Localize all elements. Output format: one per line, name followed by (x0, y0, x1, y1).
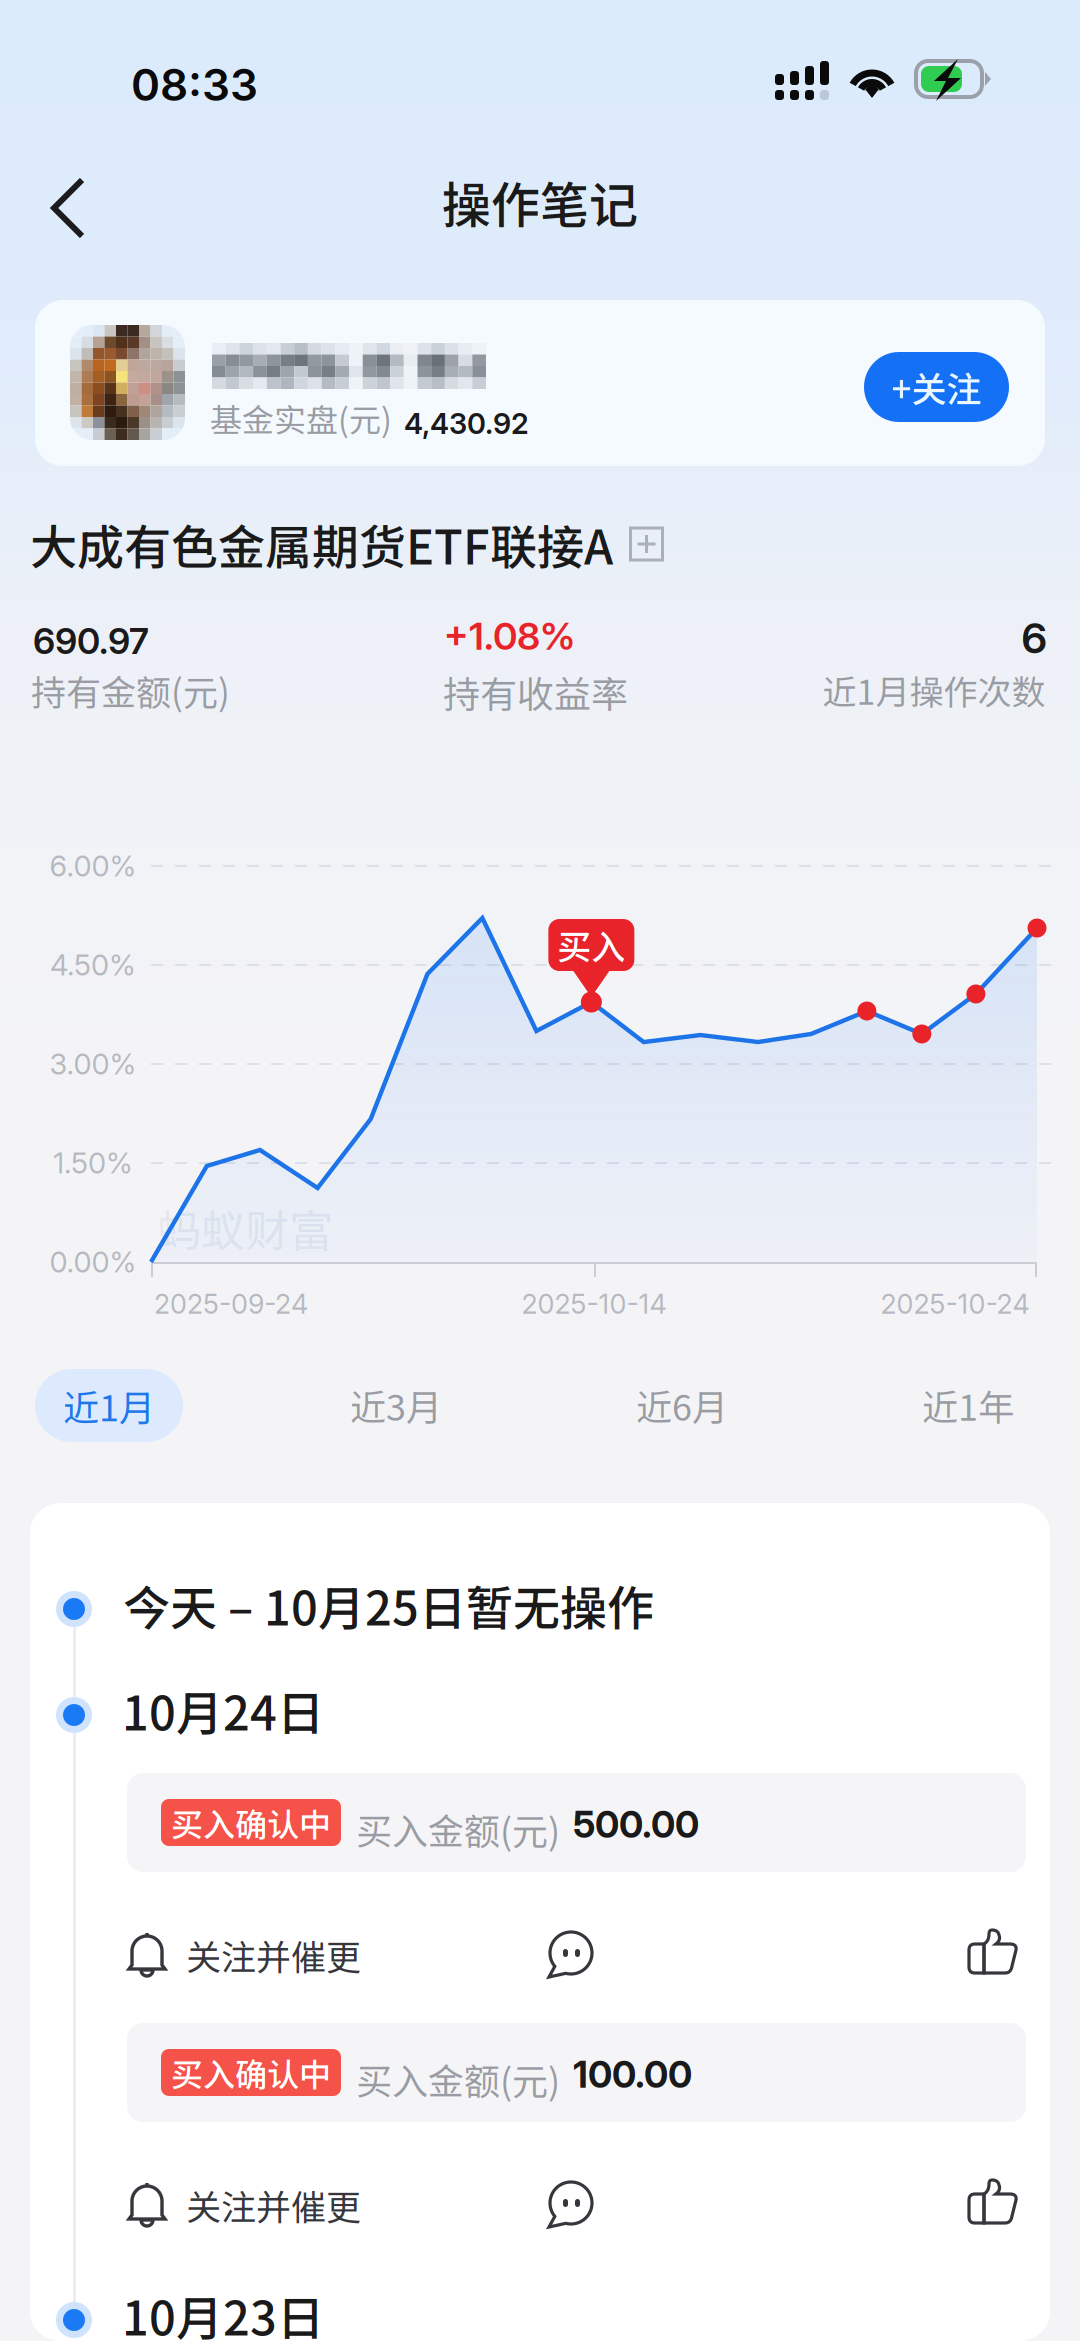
staticText: 3.00% (49, 1046, 136, 1082)
staticText: 买入确认中 (171, 2049, 331, 2096)
staticText: 持有收益率 (443, 665, 628, 719)
staticText: 08:33 (131, 58, 258, 111)
staticText: 近1年 (922, 1379, 1014, 1431)
button[interactable]: 近1年 (894, 1368, 1042, 1441)
button[interactable]: Like (943, 1905, 1043, 2005)
staticText: 买入金额(元) (356, 2053, 560, 2105)
button[interactable]: 近3月 (322, 1368, 470, 1441)
staticText: 关注并催更 (186, 1930, 361, 1980)
button[interactable]: 关注并催更 (127, 1905, 379, 2005)
staticText: 500.00 (573, 1802, 699, 1847)
staticText: 0.00% (49, 1244, 136, 1280)
button[interactable]: Comment (521, 2155, 621, 2255)
staticText: 近1月 (63, 1379, 155, 1431)
button[interactable]: 近1月 (35, 1369, 183, 1442)
staticText: 今天 – 10月25日暂无操作 (123, 1571, 654, 1639)
staticText: 10月23日 (122, 2281, 324, 2341)
staticText: 10月24日 (122, 1676, 324, 1744)
staticText: 近3月 (350, 1379, 442, 1431)
staticText: 6.00% (49, 848, 136, 884)
staticText: 持有金额(元) (31, 665, 230, 716)
staticText: 4.50% (50, 947, 136, 983)
staticText: 690.97 (33, 619, 149, 663)
button[interactable]: Comment (521, 1905, 621, 2005)
staticText: 1.50% (53, 1145, 133, 1181)
staticText: 操作笔记 (442, 166, 638, 237)
staticText: 2025-09-24 (154, 1288, 308, 1320)
staticText: +1.08% (444, 613, 575, 659)
staticText: 4,430.92 (404, 406, 529, 441)
button[interactable]: 关注并催更 (127, 2155, 379, 2255)
staticText: 买入 (557, 920, 625, 970)
button[interactable]: Like (943, 2155, 1043, 2255)
staticText: +关注 (891, 362, 981, 412)
staticText: 买入确认中 (171, 1799, 331, 1846)
staticText: 买入金额(元) (356, 1803, 560, 1855)
staticText: 大成有色金属期货ETF联接A (30, 510, 613, 578)
staticText: 6 (1021, 613, 1046, 663)
button[interactable]: +关注 (864, 352, 1009, 422)
staticText: 关注并催更 (186, 2180, 361, 2230)
staticText: 近6月 (636, 1379, 728, 1431)
staticText: 基金实盘(元) (210, 395, 392, 441)
staticText: 2025-10-14 (521, 1288, 666, 1320)
staticText: 2025-10-24 (880, 1288, 1029, 1320)
button[interactable]: Back (21, 160, 117, 256)
staticText: 近1月操作次数 (822, 665, 1045, 715)
button[interactable]: 近6月 (608, 1368, 756, 1441)
staticText: 蚂蚁财富 (157, 1196, 333, 1260)
staticText: 100.00 (573, 2052, 692, 2097)
